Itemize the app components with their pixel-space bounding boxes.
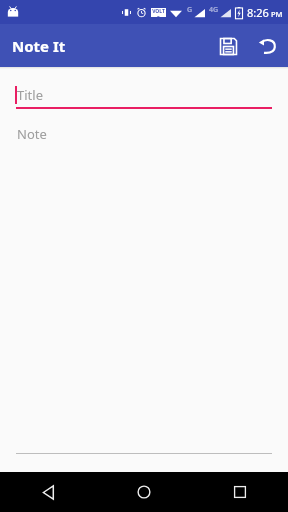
button[interactable]: Back <box>0 472 96 512</box>
button[interactable]: Save note <box>208 26 248 66</box>
staticText: 4G <box>209 5 219 15</box>
button[interactable]: Recent apps <box>192 472 288 512</box>
button[interactable]: Undo <box>248 26 288 66</box>
button[interactable]: Home <box>96 472 192 512</box>
staticText: Note It <box>12 36 66 56</box>
staticText: PM <box>271 9 283 19</box>
staticText: Title <box>17 86 43 104</box>
staticText: VOLTE <box>151 8 166 17</box>
staticText: Note <box>17 125 47 143</box>
staticText: 8:26 <box>247 5 269 20</box>
button[interactable]: Title <box>0 83 288 107</box>
staticText: G <box>187 5 193 15</box>
